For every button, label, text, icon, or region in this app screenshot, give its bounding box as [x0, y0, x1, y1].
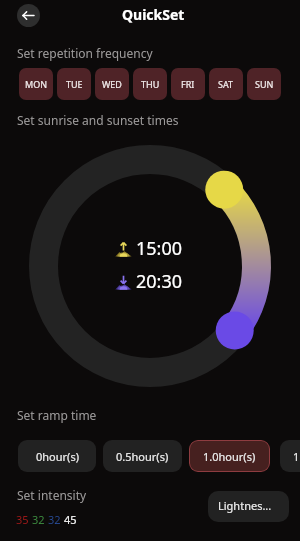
- button[interactable]: MON: [19, 68, 53, 100]
- staticText: 1.5hour(s): [293, 449, 300, 464]
- button[interactable]: Back: [17, 4, 40, 27]
- staticText: 32: [48, 512, 61, 527]
- staticText: 20:30: [136, 269, 183, 294]
- button[interactable]: Lightnes...: [208, 491, 289, 522]
- staticText: Set repetition frequency: [17, 45, 153, 61]
- staticText: TUE: [66, 78, 83, 90]
- staticText: 35: [16, 512, 29, 527]
- staticText: 1.0hour(s): [203, 449, 256, 464]
- button[interactable]: 0.5hour(s): [103, 440, 182, 472]
- staticText: 0hour(s): [36, 449, 79, 464]
- staticText: 0.5hour(s): [116, 449, 169, 464]
- button[interactable]: TUE: [57, 68, 91, 100]
- staticText: SUN: [255, 78, 274, 90]
- staticText: 15:00: [136, 236, 183, 261]
- staticText: Set intensity: [17, 487, 87, 503]
- button[interactable]: FRI: [171, 68, 205, 100]
- staticText: Lightnes...: [218, 498, 272, 513]
- button[interactable]: 1.5hour(s): [280, 440, 300, 472]
- staticText: 32: [32, 512, 45, 527]
- button[interactable]: WED: [95, 68, 129, 100]
- staticText: FRI: [181, 78, 195, 90]
- button[interactable]: 0hour(s): [18, 440, 96, 472]
- staticText: Set sunrise and sunset times: [17, 112, 179, 128]
- button[interactable]: 1.0hour(s): [189, 440, 270, 472]
- staticText: WED: [102, 78, 122, 90]
- staticText: MON: [25, 78, 48, 90]
- staticText: SAT: [218, 78, 234, 90]
- staticText: Set ramp time: [17, 407, 97, 423]
- button[interactable]: SAT: [209, 68, 243, 100]
- staticText: THU: [141, 78, 160, 90]
- staticText: 45: [64, 512, 77, 527]
- button[interactable]: SUN: [247, 68, 281, 100]
- button[interactable]: THU: [133, 68, 167, 100]
- staticText: QuickSet: [122, 5, 185, 24]
